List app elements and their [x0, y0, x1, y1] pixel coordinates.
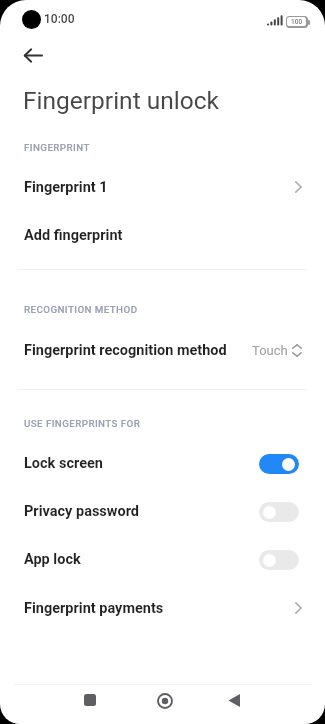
button[interactable]: Lock screen — [0, 443, 325, 484]
button[interactable]: Fingerprint recognition method — [0, 330, 325, 370]
staticText: Fingerprint recognition method — [24, 342, 227, 359]
button[interactable] — [14, 42, 52, 68]
button[interactable] — [259, 502, 299, 522]
button[interactable]: Fingerprint 1 — [0, 167, 325, 207]
button[interactable]: Privacy password — [0, 491, 325, 532]
button[interactable]: Fingerprint payments — [0, 588, 325, 628]
button[interactable] — [76, 686, 104, 714]
staticText: Add fingerprint — [24, 227, 123, 244]
button[interactable] — [259, 454, 299, 474]
staticText: Lock screen — [24, 455, 103, 472]
staticText: FINGERPRINT — [24, 142, 90, 153]
staticText: Fingerprint unlock — [23, 86, 219, 115]
staticText: Fingerprint 1 — [24, 179, 108, 196]
staticText: RECOGNITION METHOD — [24, 304, 138, 315]
staticText: Touch — [252, 343, 288, 358]
staticText: Privacy password — [24, 503, 140, 520]
staticText: USE FINGERPRINTS FOR — [24, 418, 141, 429]
button[interactable]: App lock — [0, 539, 325, 580]
staticText: 10:00 — [44, 12, 75, 26]
staticText: Fingerprint payments — [24, 600, 164, 617]
button[interactable] — [150, 686, 179, 715]
staticText: 100 — [291, 18, 303, 26]
button[interactable] — [259, 550, 299, 570]
staticText: App lock — [24, 551, 81, 568]
button[interactable]: Add fingerprint — [0, 215, 325, 255]
button[interactable] — [220, 686, 248, 714]
